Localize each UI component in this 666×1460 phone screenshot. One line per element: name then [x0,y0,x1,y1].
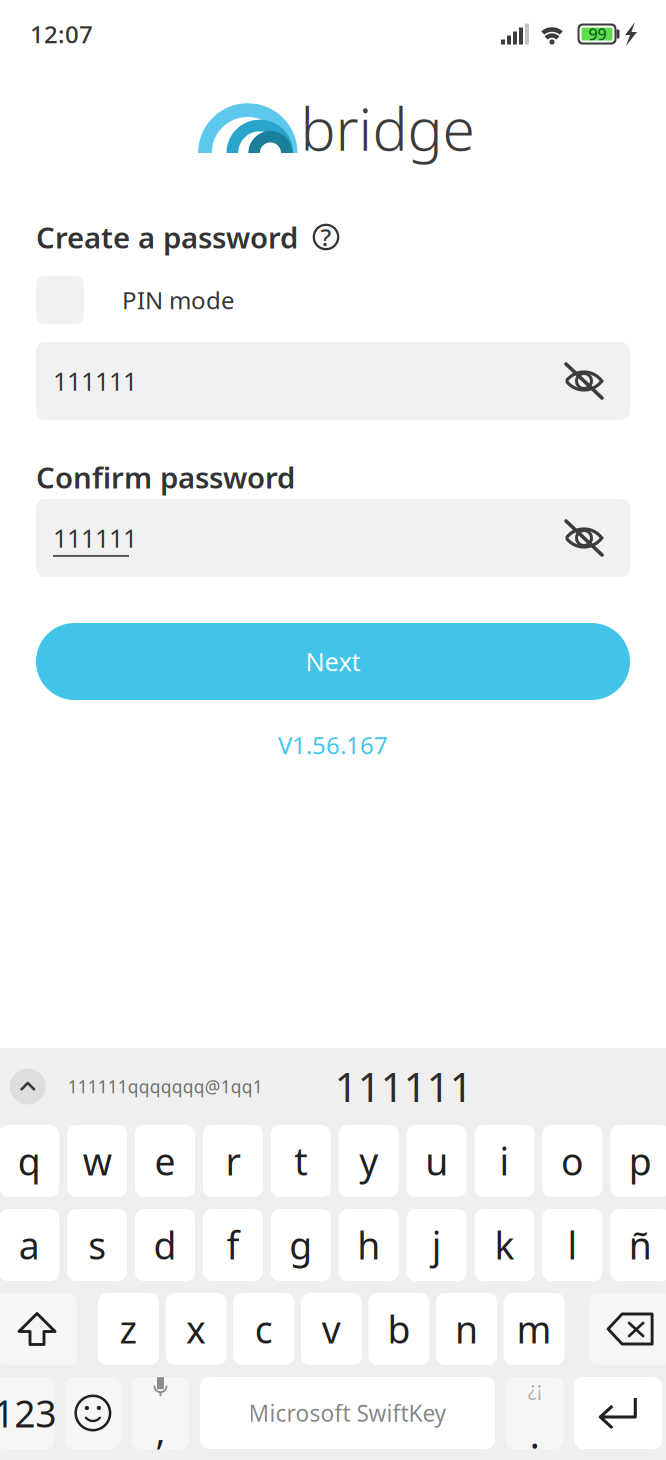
staticText: o [561,1136,584,1186]
staticText: m [517,1304,552,1354]
button[interactable]: k [474,1209,534,1281]
button[interactable]: u [407,1125,467,1197]
staticText: Microsoft SwiftKey [249,1398,447,1428]
button[interactable]: r [203,1125,263,1197]
button[interactable]: y [339,1125,399,1197]
staticText: e [155,1136,176,1186]
staticText: Create a password [36,217,298,256]
button[interactable]: g [271,1209,331,1281]
staticText: s [88,1220,106,1270]
button[interactable]: s [67,1209,127,1281]
staticText: . [530,1409,540,1459]
button[interactable]: l [542,1209,602,1281]
button[interactable]: d [135,1209,195,1281]
staticText: x [186,1304,206,1354]
button[interactable]: q [0,1125,59,1197]
staticText: Confirm password [36,457,295,496]
button[interactable]: Hide password [552,506,616,570]
button[interactable]: Period [506,1377,564,1449]
staticText: w [83,1136,112,1186]
staticText: bridge [300,89,474,167]
button[interactable]: Next [36,623,630,700]
staticText: f [226,1220,239,1270]
staticText: z [119,1304,137,1354]
button[interactable]: i [474,1125,534,1197]
staticText: 123 [0,1388,56,1438]
staticText: V1.56.167 [278,729,388,761]
staticText: q [18,1136,41,1186]
staticText: ¿¡ [528,1375,542,1401]
button[interactable]: x [166,1293,227,1365]
button[interactable]: Return [574,1377,662,1449]
staticText: PIN mode [122,284,235,316]
staticText: a [19,1220,40,1270]
button[interactable]: Backspace [590,1293,666,1365]
button[interactable]: Emoji [65,1377,121,1449]
staticText: r [225,1136,240,1186]
staticText: y [359,1136,378,1186]
button[interactable]: b [368,1293,429,1365]
button[interactable]: h [339,1209,399,1281]
button[interactable]: a [0,1209,59,1281]
button[interactable]: e [135,1125,195,1197]
button[interactable]: c [233,1293,294,1365]
button[interactable]: m [504,1293,565,1365]
staticText: k [494,1220,514,1270]
staticText: p [629,1136,652,1186]
staticText: v [322,1304,341,1354]
staticText: n [455,1304,478,1354]
staticText: ñ [629,1220,652,1270]
staticText: g [289,1220,312,1270]
button[interactable]: f [203,1209,263,1281]
button[interactable]: Space [200,1377,495,1449]
staticText: j [432,1220,442,1270]
button[interactable]: Shift [0,1293,77,1365]
button[interactable]: 123 [0,1377,54,1449]
staticText: ? [320,221,331,253]
staticText: 111111qqqqqqq@1qq1 [68,1075,263,1098]
staticText: 111111 [53,364,137,398]
button[interactable]: z [98,1293,159,1365]
button[interactable]: Expand suggestions [6,1064,50,1108]
button[interactable]: Hide password [552,349,616,413]
staticText: 111111 [335,1060,473,1113]
button[interactable]: w [67,1125,127,1197]
button[interactable]: Help [312,223,340,251]
button[interactable]: ñ [610,1209,666,1281]
button[interactable]: o [542,1125,602,1197]
staticText: Next [305,645,360,678]
button[interactable]: p [610,1125,666,1197]
staticText: d [154,1220,177,1270]
staticText: t [294,1136,307,1186]
staticText: 111111 [53,521,137,555]
staticText: h [357,1220,380,1270]
staticText: l [567,1220,577,1270]
staticText: 99 [588,23,606,45]
button[interactable]: v [301,1293,362,1365]
staticText: u [425,1136,448,1186]
button[interactable]: t [271,1125,331,1197]
staticText: 12:07 [30,18,93,50]
staticText: c [255,1304,273,1354]
button[interactable]: j [407,1209,467,1281]
staticText: , [155,1405,165,1455]
button[interactable]: Voice input, comma [131,1377,189,1449]
button[interactable]: n [436,1293,497,1365]
staticText: i [499,1136,509,1186]
staticText: b [387,1304,410,1354]
button[interactable]: V1.56.167 [36,729,630,761]
